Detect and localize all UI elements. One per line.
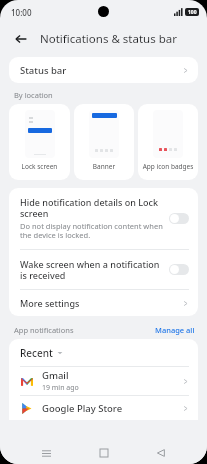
staticText: Recent (20, 346, 53, 360)
button[interactable]: More settings (9, 290, 198, 316)
staticText: App notifications (14, 325, 74, 335)
staticText: 10:00 (11, 7, 32, 18)
button[interactable]: Hide notification details on Lock screen (9, 188, 198, 249)
staticText: Notifications & status bar (40, 31, 177, 47)
staticText: Hide notification details on Lock screen (20, 196, 163, 219)
staticText: App icon badges (139, 162, 197, 171)
staticText: Do not display notification content when… (20, 221, 163, 241)
staticText: By location (14, 90, 53, 100)
staticText: Google Play Store (42, 402, 123, 415)
button[interactable]: Banner (74, 104, 134, 180)
button[interactable]: Recents (35, 442, 57, 464)
button[interactable]: App icon badges (138, 104, 198, 180)
staticText: Wake screen when a notification is recei… (20, 258, 163, 281)
button[interactable]: Recent (9, 339, 198, 366)
button[interactable]: Google Play Store (9, 396, 198, 420)
staticText: Status bar (20, 64, 67, 77)
button[interactable]: Toggle (169, 264, 189, 275)
staticText: Banner (75, 162, 133, 171)
button[interactable]: Back (11, 29, 31, 49)
button[interactable]: Manage all (155, 325, 195, 335)
staticText: More settings (20, 297, 80, 309)
button[interactable]: Status bar (9, 57, 198, 83)
button[interactable]: Gmail (9, 367, 198, 395)
button[interactable]: Home (93, 442, 115, 464)
button[interactable]: Toggle (169, 213, 189, 224)
button[interactable]: Lock screen (9, 104, 70, 180)
staticText: 19 min ago (42, 383, 79, 393)
staticText: Manage all (155, 325, 195, 335)
staticText: 100 (188, 9, 197, 16)
staticText: Lock screen (10, 162, 69, 171)
button[interactable]: Back (150, 442, 172, 464)
staticText: Gmail (42, 369, 69, 382)
button[interactable]: Wake screen when a notification is recei… (9, 250, 198, 289)
